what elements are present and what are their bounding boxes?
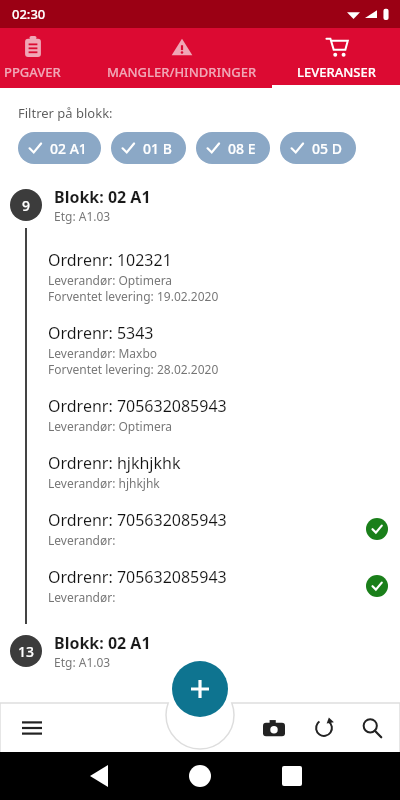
staticText: Forventet levering: 19.02.2020 [48, 288, 219, 304]
button[interactable]: Camera [254, 708, 294, 748]
staticText: 13 [18, 642, 35, 661]
staticText: 02 A1 [50, 139, 87, 158]
button[interactable]: 08 E [196, 132, 270, 164]
button[interactable]: 9 [0, 182, 400, 228]
staticText: MANGLER/HINDRINGER [107, 63, 257, 81]
staticText: Blokk: 02 A1 [54, 186, 151, 208]
button[interactable]: PPGAVER [0, 28, 92, 88]
button[interactable]: Ordrenr: 102321 [0, 240, 400, 313]
button[interactable]: 05 D [280, 132, 356, 164]
button[interactable]: Ordrenr: 5343 [0, 313, 400, 386]
staticText: Etg: A1.03 [54, 208, 111, 224]
button[interactable]: Refresh [304, 708, 344, 748]
staticText: Ordrenr: hjkhjkhk [48, 452, 181, 474]
staticText: Forventet levering: 28.02.2020 [48, 361, 219, 377]
button[interactable]: 01 B [111, 132, 186, 164]
button[interactable]: Ordrenr: hjkhjkhk [0, 443, 400, 500]
staticText: 05 D [312, 139, 342, 158]
staticText: Leverandør: hjhkjhk [48, 475, 160, 491]
staticText: PPGAVER [4, 63, 61, 81]
staticText: Ordrenr: 5343 [48, 322, 154, 344]
button[interactable]: LEVERANSER [272, 28, 400, 88]
button[interactable]: Add [172, 661, 228, 717]
staticText: Leverandør: Maxbo [48, 345, 158, 361]
staticText: Ordrenr: 705632085943 [48, 566, 227, 588]
staticText: 08 E [228, 139, 256, 158]
button[interactable]: 02 A1 [18, 132, 101, 164]
staticText: Ordrenr: 705632085943 [48, 509, 227, 531]
staticText: Leverandør: Optimera [48, 272, 173, 288]
button[interactable]: Ordrenr: 705632085943 [0, 557, 400, 614]
staticText: Leverandør: Optimera [48, 418, 173, 434]
staticText: Ordrenr: 705632085943 [48, 395, 227, 417]
staticText: Leverandør: [48, 532, 119, 548]
staticText: LEVERANSER [297, 63, 376, 81]
button[interactable]: Menu [14, 710, 50, 746]
staticText: Etg: A1.03 [54, 654, 111, 670]
button[interactable]: Ordrenr: 705632085943 [0, 500, 400, 557]
button[interactable]: MANGLER/HINDRINGER [92, 28, 272, 88]
staticText: 01 B [143, 139, 172, 158]
staticText: Leverandør: [48, 589, 119, 605]
staticText: Ordrenr: 102321 [48, 249, 172, 271]
button[interactable]: Ordrenr: 705632085943 [0, 386, 400, 443]
staticText: Filtrer på blokk: [18, 104, 113, 122]
staticText: 9 [22, 196, 31, 215]
staticText: 02:30 [12, 5, 46, 23]
staticText: Blokk: 02 A1 [54, 632, 151, 654]
button[interactable]: 13 [0, 628, 400, 674]
button[interactable]: Search [352, 708, 392, 748]
